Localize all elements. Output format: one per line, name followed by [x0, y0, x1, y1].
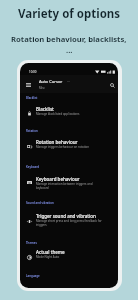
- staticText: Manage triggers behaviour on rotation: [36, 145, 89, 149]
- button[interactable]: Open navigation menu: [21, 78, 35, 92]
- staticText: Rotation: [26, 129, 38, 133]
- staticText: ...: [66, 45, 73, 55]
- staticText: Manage short press and long press feedba…: [36, 219, 102, 227]
- staticText: ...: [67, 78, 71, 84]
- button[interactable]: Trigger sound and vibration: [20, 213, 118, 229]
- staticText: Rotation behaviour, blacklists,: [11, 34, 127, 44]
- staticText: Variety of options: [18, 6, 121, 22]
- staticText: Themes: [26, 241, 37, 245]
- staticText: Language: [26, 274, 40, 278]
- staticText: Actual theme: [36, 249, 65, 255]
- staticText: Blacklist: [36, 106, 54, 112]
- button[interactable]: Blacklist: [20, 106, 118, 122]
- button[interactable]: Rotation behaviour: [20, 139, 118, 155]
- staticText: Rotation behaviour: [36, 139, 78, 145]
- staticText: Manage interaction between triggers and …: [36, 182, 102, 190]
- staticText: Keyboard behaviour: [36, 176, 80, 182]
- staticText: Misc: [39, 86, 45, 90]
- staticText: Manage blacklisted applications: [36, 112, 80, 116]
- staticText: Keyboard: [26, 165, 40, 169]
- staticText: Sound and vibration: [26, 201, 54, 205]
- staticText: Trigger sound and vibration: [36, 213, 96, 219]
- staticText: Mode Night Auto: [36, 255, 60, 259]
- staticText: 10:00: [29, 70, 37, 74]
- button[interactable]: Search: [105, 78, 118, 92]
- button[interactable]: Actual theme: [20, 249, 118, 265]
- staticText: Blacklist: [26, 96, 38, 100]
- button[interactable]: Keyboard behaviour: [20, 176, 118, 192]
- staticText: Auto Cursor: [39, 79, 63, 85]
